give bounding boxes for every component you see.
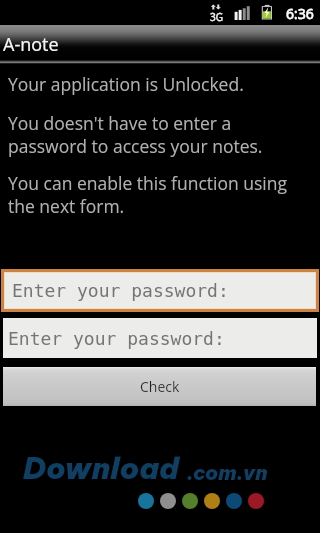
- staticText: 3G: [210, 10, 223, 24]
- staticText: Download: [23, 449, 180, 487]
- button[interactable]: Enter your password:: [3, 318, 317, 358]
- staticText: 6:36: [286, 4, 314, 23]
- staticText: You doesn't have to enter a password to …: [8, 111, 263, 158]
- staticText: A-note: [3, 32, 59, 57]
- staticText: You can enable this function using the n…: [8, 171, 287, 218]
- staticText: .com.vn: [187, 460, 268, 485]
- staticText: Your application is Unlocked.: [8, 72, 244, 96]
- button[interactable]: Check: [3, 367, 316, 406]
- staticText: Check: [140, 377, 180, 396]
- staticText: Enter your password:: [8, 328, 225, 349]
- staticText: Enter your password:: [12, 280, 229, 301]
- button[interactable]: Enter your password:: [5, 273, 315, 308]
